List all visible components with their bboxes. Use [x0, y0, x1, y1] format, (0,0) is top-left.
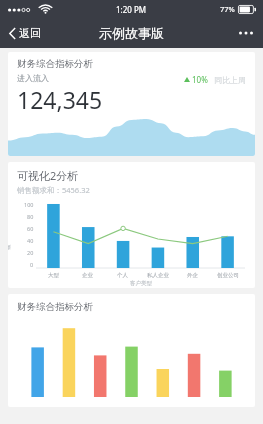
staticText: 财务综合指标分析 [17, 58, 93, 70]
button[interactable]: 可视化2分析 [8, 162, 255, 288]
staticText: 同比上周 [214, 75, 246, 85]
staticText: 客户类型 [130, 280, 152, 287]
staticText: 77% [220, 4, 235, 14]
staticText: 私人企业 [147, 272, 169, 279]
staticText: 100 [24, 201, 34, 208]
button[interactable]: 财务综合指标分析 [8, 294, 255, 407]
staticText: 可视化2分析 [17, 168, 79, 183]
button[interactable]: 财务综合指标分析 [8, 52, 255, 156]
staticText: 40 [27, 237, 34, 244]
staticText: 10% [192, 74, 208, 85]
staticText: 销售额求和：5456.32 [17, 185, 90, 195]
staticText: 20 [27, 249, 34, 256]
staticText: 返回 [19, 26, 41, 40]
button[interactable]: More options [229, 23, 263, 43]
button[interactable]: 返回 [0, 22, 51, 44]
staticText: 进入流入 [17, 73, 49, 83]
staticText: 个人 [117, 272, 128, 279]
staticText: 0 [30, 261, 34, 268]
staticText: 大型 [48, 272, 59, 279]
staticText: 销售额 [8, 238, 11, 250]
staticText: 1:20 PM [116, 4, 147, 15]
staticText: 示例故事版 [99, 25, 164, 41]
staticText: 124,345 [17, 84, 103, 115]
staticText: 80 [27, 213, 34, 220]
staticText: 创业公司 [217, 272, 239, 279]
staticText: 外企 [187, 272, 198, 279]
staticText: 财务综合指标分析 [17, 301, 93, 313]
staticText: 60 [27, 225, 34, 232]
staticText: 企业 [82, 272, 93, 279]
